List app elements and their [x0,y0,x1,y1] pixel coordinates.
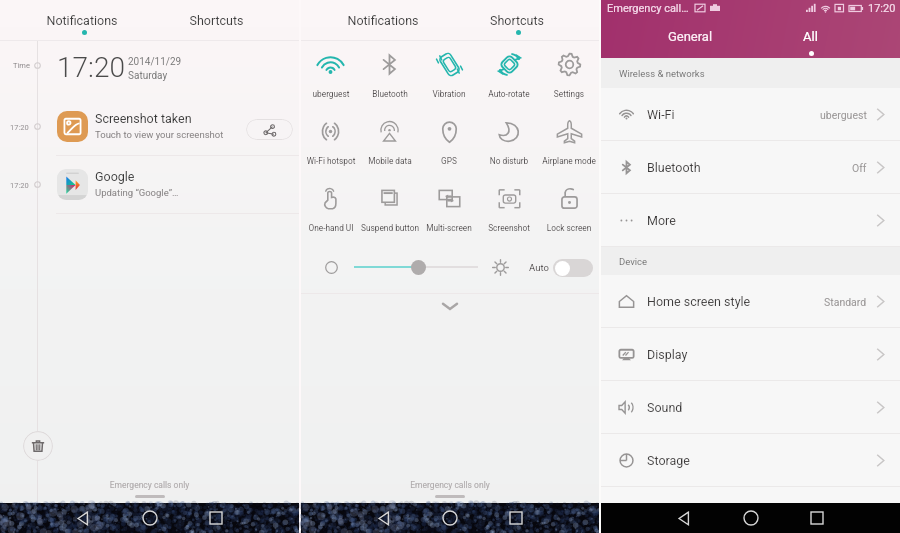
button[interactable]: Share [246,119,293,140]
button[interactable]: Vibration [419,41,479,108]
staticText: Lock screen [524,223,614,233]
button[interactable]: Shortcuts [450,0,584,41]
button[interactable]: Display [601,328,900,381]
staticText: Time [13,61,30,70]
staticText: Sound [647,400,683,415]
button[interactable]: No disturb [479,108,539,175]
button[interactable]: Wi-Fi [601,88,900,141]
staticText: Notifications [316,13,450,28]
button[interactable]: 17:20 [0,98,299,155]
staticText: Auto-rotate [464,89,554,99]
staticText: All [750,29,871,44]
staticText: Home screen style [647,294,751,309]
staticText: Screenshot [464,223,554,233]
staticText: Settings [524,89,614,99]
button[interactable]: Home [735,503,767,533]
staticText: GPS [404,156,494,166]
button[interactable]: Storage [601,434,900,487]
staticText: uberguest [286,89,376,99]
button[interactable]: More [601,194,900,247]
button[interactable]: Collapse [301,294,599,318]
button[interactable]: Bluetooth [360,41,419,108]
staticText: 17:20 [57,51,126,84]
staticText: Bluetooth [345,89,435,99]
staticText: Off [852,162,867,174]
button[interactable]: 17:20 [0,156,299,213]
button[interactable]: Auto brightness toggle [553,259,593,277]
button[interactable]: Screenshot [479,175,539,242]
button[interactable]: Bluetooth [601,141,900,194]
button[interactable]: Recents [801,503,833,533]
button[interactable]: Back [67,503,99,533]
staticText: Screenshot taken [95,111,192,126]
staticText: Multi-screen [404,223,494,233]
staticText: Emergency calls only [301,480,599,490]
staticText: Saturday [128,70,168,82]
staticText: Google [95,169,135,184]
staticText: Shortcuts [450,13,584,28]
button[interactable]: Multi-screen [419,175,479,242]
staticText: Bluetooth [647,160,701,175]
staticText: Device [619,256,648,267]
staticText: Suspend button [345,223,435,233]
button[interactable]: Notifications [15,0,149,41]
button[interactable]: Wi-Fi hotspot [301,108,360,175]
button[interactable]: Suspend button [360,175,419,242]
staticText: Mobile data [345,156,435,166]
button[interactable]: Recents [200,503,232,533]
staticText: Emergency call… [607,2,689,15]
staticText: Auto [529,262,549,273]
button[interactable]: Notifications [316,0,450,41]
button[interactable]: Home [134,503,166,533]
button[interactable]: Clear all notifications [23,431,53,461]
button[interactable]: Back [368,503,400,533]
button[interactable]: Airplane mode [539,108,599,175]
staticText: Updating “Google”… [95,187,179,198]
button[interactable]: Home [434,503,466,533]
staticText: Notifications [15,13,149,28]
staticText: Wireless & networks [619,68,705,79]
staticText: 2014/11/29 [128,56,182,68]
button[interactable]: Brightness slider [411,260,426,275]
staticText: 17:20 [868,2,896,15]
staticText: Standard [824,296,867,308]
button[interactable]: Mobile data [360,108,419,175]
staticText: Airplane mode [524,156,614,166]
staticText: Shortcuts [149,13,284,28]
staticText: More [647,213,676,228]
button[interactable]: One-hand UI [301,175,360,242]
staticText: Vibration [404,89,494,99]
staticText: 17:20 [10,123,29,132]
button[interactable]: Back [668,503,700,533]
button[interactable]: Sound [601,381,900,434]
staticText: Touch to view your screenshot [95,129,224,140]
staticText: 17:20 [10,181,29,190]
button[interactable]: GPS [419,108,479,175]
button[interactable]: All [750,21,871,58]
staticText: Wi-Fi hotspot [286,156,376,166]
staticText: Wi-Fi [647,107,675,122]
staticText: Display [647,347,688,362]
staticText: One-hand UI [286,223,376,233]
button[interactable]: Home screen style [601,275,900,328]
staticText: No disturb [464,156,554,166]
staticText: Emergency calls only [0,480,299,490]
button[interactable]: Lock screen [539,175,599,242]
button[interactable]: Settings [539,41,599,108]
staticText: General [630,29,750,44]
button[interactable]: uberguest [301,41,360,108]
button[interactable]: Shortcuts [149,0,284,41]
button[interactable]: Recents [500,503,532,533]
staticText: Storage [647,453,690,468]
button[interactable]: General [630,21,750,58]
button[interactable]: Auto-rotate [479,41,539,108]
staticText: uberguest [820,109,867,121]
